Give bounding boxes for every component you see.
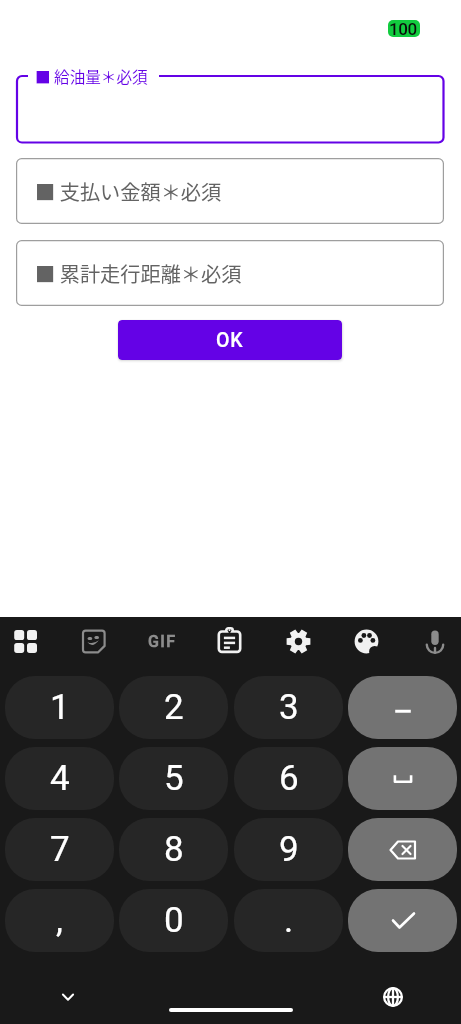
button[interactable]: Settings — [275, 617, 323, 665]
button[interactable]: Space — [348, 747, 457, 810]
button[interactable]: Voice input — [411, 617, 459, 665]
staticText: ■ 給油量＊必須 — [35, 65, 148, 88]
staticText: 5 — [164, 758, 184, 799]
button[interactable]: Change keyboard language — [371, 975, 415, 1019]
button[interactable]: Clipboard — [206, 617, 254, 665]
button[interactable]: 6 — [234, 747, 343, 810]
button[interactable]: Enter — [348, 889, 457, 952]
button[interactable]: Minus — [348, 676, 457, 739]
staticText: 0 — [164, 900, 184, 941]
button[interactable]: OK — [118, 320, 342, 360]
button[interactable]: . — [234, 889, 343, 952]
button[interactable]: 8 — [119, 818, 228, 881]
button[interactable]: GIF — [138, 617, 186, 665]
staticText: 7 — [50, 829, 70, 870]
staticText: 9 — [279, 829, 299, 870]
staticText: , — [56, 900, 63, 941]
button[interactable]: 9 — [234, 818, 343, 881]
staticText: 4 — [50, 758, 70, 799]
button[interactable]: Themes — [343, 617, 391, 665]
staticText: ■ 累計走行距離＊必須 — [35, 259, 242, 288]
button[interactable]: App shortcuts — [2, 617, 50, 665]
button[interactable]: Backspace — [348, 818, 457, 881]
button[interactable]: 4 — [5, 747, 114, 810]
staticText: ■ 支払い金額＊必須 — [35, 177, 222, 206]
staticText: 2 — [164, 687, 184, 728]
staticText: 100 — [389, 20, 417, 36]
button[interactable]: ■ 累計走行距離＊必須 — [16, 240, 444, 306]
staticText: 8 — [164, 829, 184, 870]
staticText: 6 — [279, 758, 299, 799]
button[interactable]: 5 — [119, 747, 228, 810]
button[interactable]: Stickers — [70, 617, 118, 665]
button[interactable]: Hide keyboard — [46, 975, 90, 1019]
button[interactable]: , — [5, 889, 114, 952]
button[interactable]: 0 — [119, 889, 228, 952]
button[interactable]: ■ 支払い金額＊必須 — [16, 158, 444, 224]
staticText: 3 — [279, 687, 299, 728]
staticText: . — [284, 900, 294, 941]
button[interactable]: ■ 給油量＊必須 — [0, 60, 461, 150]
staticText: 1 — [50, 687, 70, 728]
staticText: GIF — [148, 632, 177, 651]
button[interactable]: 1 — [5, 676, 114, 739]
button[interactable]: 7 — [5, 818, 114, 881]
button[interactable]: 3 — [234, 676, 343, 739]
button[interactable]: 2 — [119, 676, 228, 739]
staticText: OK — [216, 329, 244, 352]
